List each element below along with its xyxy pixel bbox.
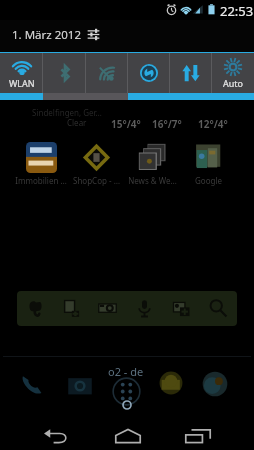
button[interactable]: search [200, 291, 237, 326]
button[interactable]: WLAN [0, 53, 43, 100]
staticText: 22:53 [220, 2, 254, 20]
staticText: Google [195, 175, 222, 186]
button[interactable]: Gallery [66, 372, 94, 400]
button[interactable]: Auto [212, 53, 254, 100]
staticText: Auto [223, 77, 244, 89]
button[interactable]: camera [89, 291, 126, 326]
staticText: Immobilien … [15, 175, 67, 186]
button[interactable]: Phone [19, 370, 47, 398]
button[interactable]: Google [180, 140, 236, 186]
button[interactable] [170, 53, 212, 100]
button[interactable]: note [53, 291, 89, 326]
staticText: Sindelfingen, Ger… [32, 107, 102, 118]
button[interactable] [128, 53, 170, 100]
button[interactable]: Apps [112, 377, 141, 406]
button[interactable] [43, 53, 86, 100]
button[interactable] [86, 53, 128, 100]
button[interactable]: Recents [176, 414, 220, 448]
button[interactable]: News & We… [124, 140, 180, 186]
staticText: o2 - de [108, 364, 144, 379]
button[interactable]: Back [34, 414, 78, 448]
button[interactable]: Messaging [158, 370, 184, 396]
staticText: 12°/4° [198, 117, 228, 131]
staticText: News & We… [128, 175, 177, 186]
button[interactable]: elephant [17, 291, 53, 326]
button[interactable]: Browser [201, 370, 229, 398]
button[interactable]: Home [106, 414, 150, 448]
button[interactable]: ShopCop - … [68, 140, 124, 186]
button[interactable]: elephant [17, 291, 237, 326]
button[interactable]: card [163, 291, 200, 326]
staticText: 1. März 2012 [12, 27, 81, 43]
staticText: ShopCop - … [73, 175, 120, 186]
staticText: Clear [67, 117, 87, 128]
button[interactable]: mic [126, 291, 163, 326]
staticText: WLAN [9, 77, 35, 89]
staticText: 15°/4° [111, 117, 141, 131]
staticText: 16°/7° [152, 117, 182, 131]
button[interactable]: Immobilien … [13, 140, 69, 186]
button[interactable]: Settings [87, 28, 100, 41]
